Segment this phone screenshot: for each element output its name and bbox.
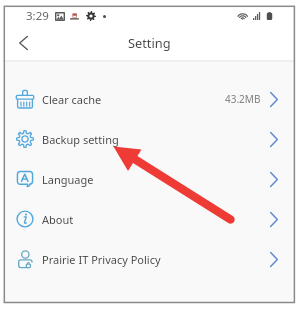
- staticText: Language: [42, 172, 94, 187]
- staticText: Backup setting: [42, 132, 119, 147]
- button[interactable]: Back: [8, 28, 38, 58]
- staticText: Prairie IT Privacy Policy: [42, 252, 161, 267]
- button[interactable]: Clear cache: [4, 79, 294, 119]
- staticText: Setting: [128, 34, 171, 51]
- button[interactable]: About: [4, 199, 294, 239]
- button[interactable]: Language: [4, 159, 294, 199]
- staticText: 3:29: [26, 8, 49, 24]
- staticText: About: [42, 212, 74, 227]
- staticText: Clear cache: [42, 92, 102, 107]
- button[interactable]: Prairie IT Privacy Policy: [4, 239, 294, 279]
- button[interactable]: Backup setting: [4, 119, 294, 159]
- staticText: 43.2MB: [225, 92, 261, 106]
